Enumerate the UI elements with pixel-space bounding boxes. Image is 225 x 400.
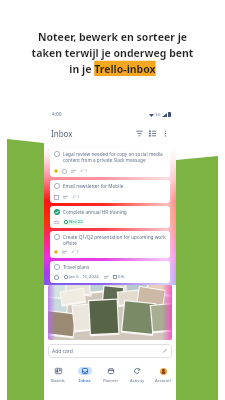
button[interactable]: More options [159, 127, 172, 140]
staticText: 1 [85, 168, 88, 174]
staticText: Legal review needed for copy on social m… [63, 151, 166, 163]
button[interactable]: Account [150, 362, 176, 390]
staticText: Inbox [79, 378, 91, 384]
staticText: Travel plans [63, 264, 90, 270]
button[interactable]: Sort [146, 127, 159, 140]
staticText: Boards [51, 378, 65, 384]
button[interactable]: Inbox [71, 362, 98, 390]
staticText: 1 [76, 249, 79, 255]
staticText: 0/6 [118, 274, 125, 280]
button[interactable]: Add card [48, 344, 172, 358]
staticText: Nov 22 [69, 219, 83, 225]
staticText: 1 [77, 194, 80, 200]
staticText: Noteer, bewerk en sorteer je taken terwi… [6, 30, 219, 76]
button[interactable]: Planner [98, 362, 124, 390]
button[interactable]: Legal review needed for copy on social m… [50, 148, 170, 177]
button[interactable]: Filter [133, 127, 146, 140]
button[interactable]: Email newsletter for Mobile [50, 180, 170, 203]
staticText: Jan 6 - 10, 2024 [69, 274, 99, 280]
staticText: Inbox [51, 128, 73, 139]
button[interactable]: Boards [44, 362, 71, 390]
staticText: Planner [103, 378, 119, 384]
staticText: 3G [155, 112, 161, 118]
button[interactable]: Create Q1/Q2 presentation for upcoming w… [50, 231, 170, 258]
staticText: 4:00 [52, 111, 62, 118]
button[interactable]: Travel plans [50, 261, 170, 283]
button[interactable]: Activity [124, 362, 150, 390]
staticText: Account [155, 378, 171, 384]
staticText: Create Q1/Q2 presentation for upcoming w… [63, 234, 166, 246]
staticText: Complete annual HR training [63, 209, 127, 215]
staticText: Add card [52, 348, 73, 355]
staticText: Email newsletter for Mobile [63, 183, 124, 189]
button[interactable]: Complete annual HR training [50, 206, 170, 228]
staticText: Activity [130, 378, 145, 384]
